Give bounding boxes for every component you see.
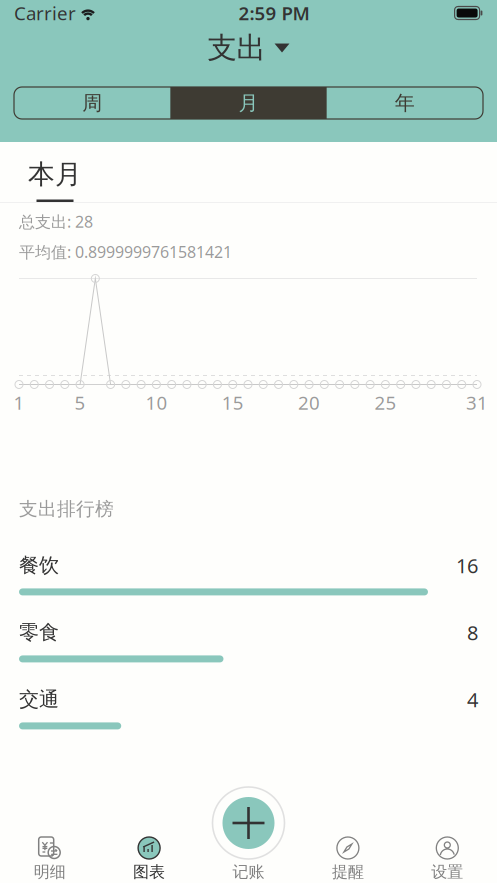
staticText: 图表 — [133, 862, 165, 882]
staticText: 月 — [238, 91, 258, 115]
staticText: 年 — [395, 91, 415, 115]
staticText: 零食 — [19, 620, 59, 645]
staticText: 4 — [467, 686, 478, 713]
staticText: 平均值: 0.8999999761581421 — [19, 241, 232, 262]
staticText: 总支出: 28 — [19, 211, 93, 232]
staticText: 支出 — [207, 30, 265, 66]
staticText: 记账 — [232, 862, 264, 882]
staticText: 周 — [82, 91, 102, 115]
button[interactable]: 支出 — [207, 26, 289, 70]
staticText: 2:59 PM — [238, 1, 309, 25]
button[interactable]: 周 — [14, 87, 170, 119]
button[interactable]: 图表 — [99, 815, 199, 883]
staticText: 支出排行榜 — [19, 497, 114, 520]
staticText: 明细 — [34, 862, 66, 882]
staticText: Carrier — [14, 1, 76, 25]
staticText: 设置 — [431, 862, 463, 882]
button[interactable]: 月 — [170, 87, 327, 119]
staticText: 25 — [374, 390, 396, 415]
staticText: 16 — [456, 552, 478, 579]
button[interactable]: 设置 — [398, 815, 497, 883]
button[interactable]: 年 — [327, 87, 483, 119]
staticText: 提醒 — [332, 862, 364, 882]
staticText: 8 — [467, 619, 478, 646]
staticText: 餐饮 — [19, 553, 59, 578]
button[interactable]: 记账 — [199, 815, 298, 883]
staticText: 31 — [466, 390, 488, 415]
button[interactable]: 明细 — [0, 815, 99, 883]
staticText: 1 — [13, 390, 24, 415]
button[interactable]: 提醒 — [298, 815, 398, 883]
staticText: 15 — [222, 390, 244, 415]
button[interactable]: 记账 — [209, 784, 287, 862]
staticText: 20 — [298, 390, 320, 415]
staticText: 交通 — [19, 687, 59, 712]
staticText: 5 — [75, 390, 86, 415]
staticText: 本月 — [28, 158, 82, 191]
staticText: 10 — [145, 390, 167, 415]
